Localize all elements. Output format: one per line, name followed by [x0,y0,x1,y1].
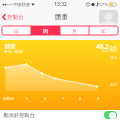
staticText: 50.5 [110,56,117,60]
staticText: 6 [44,96,46,100]
staticText: 體重 [4,43,16,50]
staticText: 周 [43,28,48,34]
staticText: 年 [101,28,106,34]
staticText: 47.5 [110,83,117,87]
staticText: 5 [26,96,28,100]
staticText: 8 [79,96,81,100]
staticText: 今天 13:26 [102,49,117,53]
staticText: 48.2 [96,42,109,50]
button[interactable]: 顯示於控制台 [0,110,120,120]
staticText: 平均：49.57 [4,49,23,54]
staticText: 體重 [55,13,68,21]
staticText: 控制台 [7,14,24,21]
staticText: 4月6日 [3,96,14,101]
staticText: 7 [62,96,64,100]
button[interactable]: 月 [60,26,89,35]
staticText: 9 [97,96,99,100]
staticText: 13:32 [54,1,67,8]
staticText: 67% [99,2,108,8]
staticText: 顯示於控制台 [3,112,35,119]
button[interactable]: 周 [31,26,60,35]
button[interactable]: 年 [89,26,118,35]
staticText: 日 [14,28,19,34]
button[interactable]: 控制台 [1,11,25,23]
staticText: 月 [72,28,77,34]
button[interactable]: 日 [2,26,31,35]
staticText: 公斤 [109,45,117,50]
staticText: 中国联通 [13,2,30,7]
button[interactable]: Profile [99,10,118,24]
